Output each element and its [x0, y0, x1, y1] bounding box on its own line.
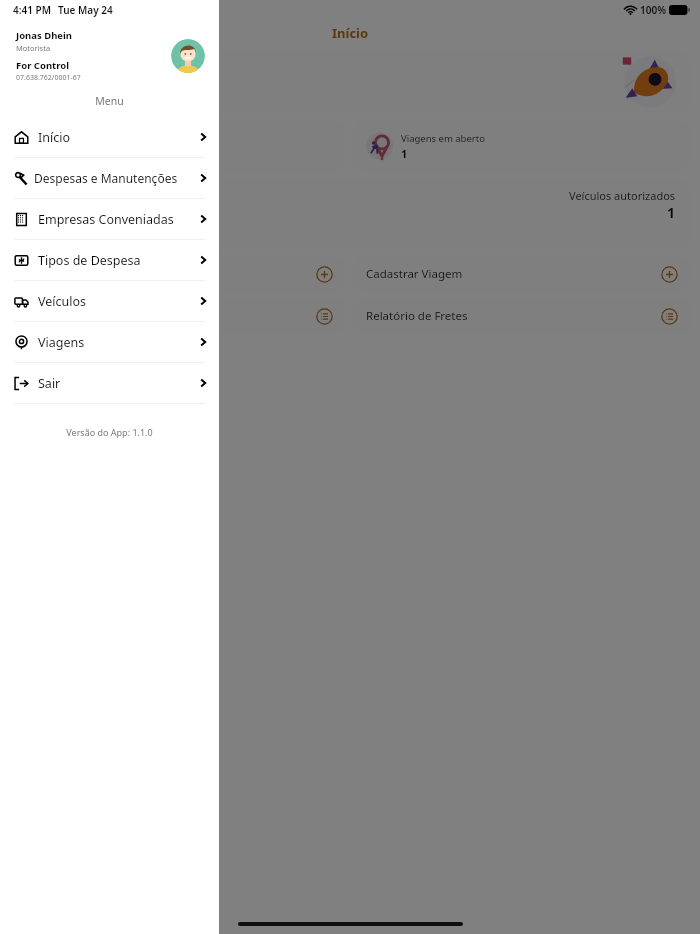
staticText: Relatório de Fretes	[366, 308, 661, 324]
staticText: Menu	[0, 94, 219, 108]
staticText: Tipos de Despesa	[38, 252, 198, 269]
staticText: Sair	[38, 375, 198, 392]
staticText: 1	[401, 146, 408, 161]
staticText: Veículos autorizados	[569, 188, 676, 203]
staticText: Abastecimento	[22, 266, 316, 282]
staticText: Veículos	[38, 293, 198, 310]
staticText: Tue May 24	[58, 3, 113, 17]
button[interactable]: Início	[0, 117, 219, 157]
staticText: Relatório de Despesas	[22, 308, 316, 324]
staticText: Empresas Conveniadas	[38, 211, 198, 228]
button[interactable]: Abastecimento	[10, 257, 345, 291]
staticText: 4:41 PM	[13, 3, 51, 17]
button[interactable]: Viagens em aberto	[354, 121, 690, 171]
staticText: Viagens finalizadas	[57, 132, 142, 145]
staticText: Versão do App: 1.1.0	[0, 426, 219, 438]
button[interactable]: Cadastrar Viagem	[354, 257, 690, 291]
button[interactable]	[0, 0, 700, 934]
staticText: 1	[667, 203, 676, 222]
staticText: Cadastrar Viagem	[366, 266, 661, 282]
button[interactable]: Empresas Conveniadas	[0, 199, 219, 239]
staticText: 0	[57, 146, 64, 161]
staticText: Início	[38, 129, 198, 146]
button[interactable]: Tipos de Despesa	[0, 240, 219, 280]
staticText: Viagens em aberto	[401, 132, 485, 145]
button[interactable]: Viagens finalizadas	[10, 121, 345, 171]
staticText: 100%	[640, 3, 666, 17]
staticText: Jonas Dhein	[16, 29, 73, 42]
staticText: Viagens	[38, 334, 198, 351]
button[interactable]: Relatório de Fretes	[354, 299, 690, 333]
staticText: Início	[332, 24, 369, 42]
button[interactable]: Relatório de Despesas	[10, 299, 345, 333]
button[interactable]: Viagens	[0, 322, 219, 362]
staticText: 07.638.762/0001-67	[16, 73, 81, 83]
button[interactable]: Sair	[0, 363, 219, 403]
button[interactable]: Veículos	[0, 281, 219, 321]
staticText: Motorista	[16, 43, 51, 53]
button[interactable]: Despesas e Manutenções	[0, 158, 219, 198]
staticText: For Control	[16, 59, 70, 72]
staticText: Despesas e Manutenções	[34, 170, 198, 186]
button[interactable]: Perfil do usuário	[171, 39, 205, 73]
